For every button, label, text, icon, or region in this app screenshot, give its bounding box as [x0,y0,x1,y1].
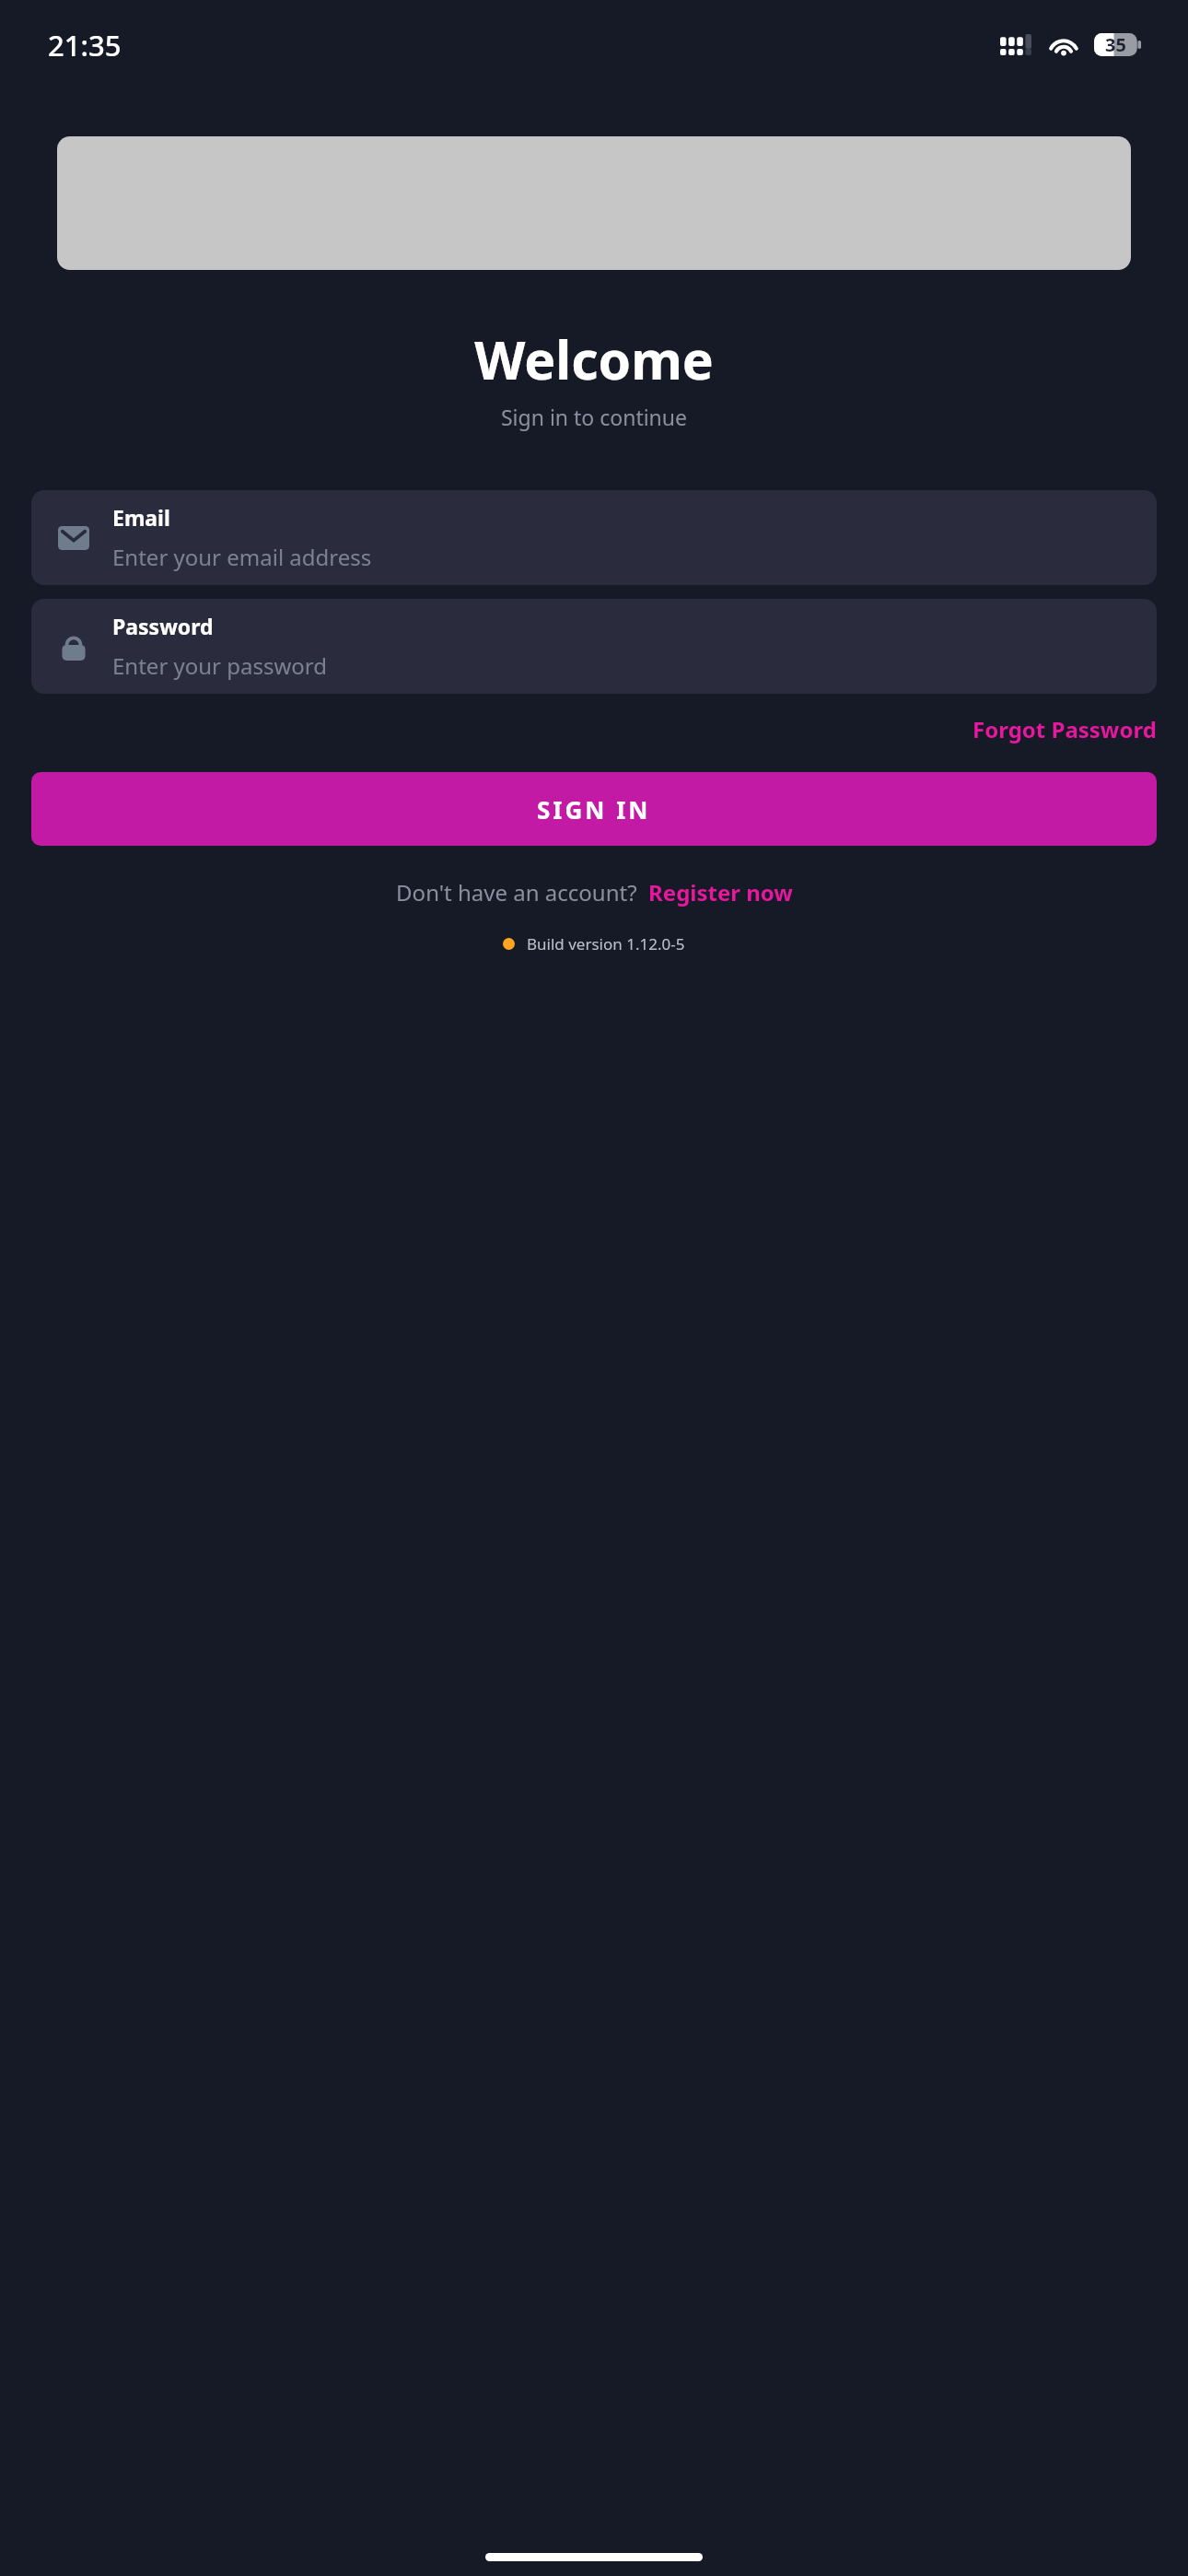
button[interactable]: SIGN IN [31,772,1157,846]
staticText: Password [112,612,214,640]
staticText: Enter your password [112,650,328,681]
button[interactable]: Email [31,490,1157,585]
staticText: Forgot Password [973,714,1157,744]
staticText: Don't have an account? Register now [396,877,793,907]
staticText: SIGN IN [537,793,651,825]
button[interactable]: Password [31,599,1157,694]
staticText: Email [112,503,170,532]
other: Password [55,628,92,665]
staticText: 21:35 [48,26,122,64]
staticText: Welcome [0,323,1188,395]
other: Email [55,520,92,556]
button[interactable]: Forgot Password [969,707,1160,752]
staticText: Enter your email address [112,542,372,572]
staticText: Build version 1.12.0-5 [527,933,685,954]
button[interactable]: Don't have an account? Register now [389,872,800,913]
staticText: 35 [1105,32,1126,57]
staticText: Sign in to continue [0,403,1188,431]
